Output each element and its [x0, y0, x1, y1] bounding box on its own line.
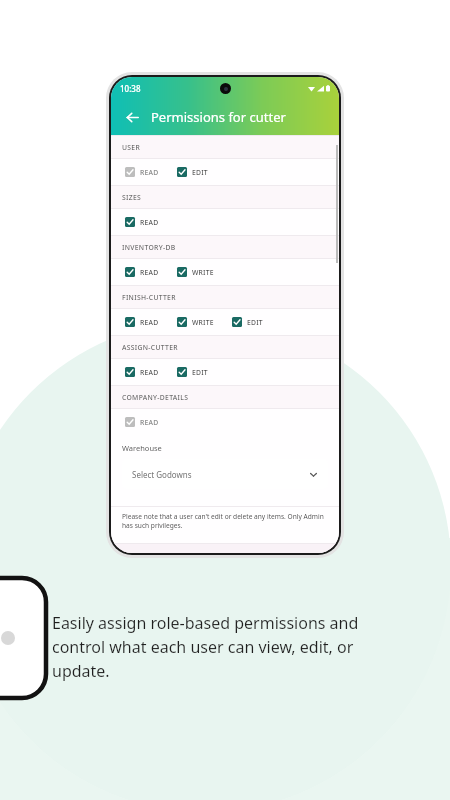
- button[interactable]: Back: [119, 104, 145, 130]
- staticText: READ: [140, 168, 159, 177]
- staticText: COMPANY-DETAILS: [122, 393, 189, 402]
- staticText: EDIT: [192, 168, 208, 177]
- button[interactable]: Select Godowns: [122, 459, 328, 489]
- staticText: Warehouse: [122, 443, 162, 453]
- staticText: WRITE: [192, 318, 214, 327]
- button[interactable]: EDIT: [232, 317, 281, 327]
- staticText: READ: [140, 218, 159, 227]
- button[interactable]: READ: [125, 217, 177, 227]
- button[interactable]: READ: [125, 367, 177, 377]
- staticText: READ: [140, 368, 159, 377]
- staticText: READ: [140, 318, 159, 327]
- staticText: Permissions for cutter: [151, 108, 286, 126]
- button[interactable]: EDIT: [177, 367, 226, 377]
- staticText: READ: [140, 418, 159, 427]
- button[interactable]: READ: [125, 267, 177, 277]
- staticText: EDIT: [192, 368, 208, 377]
- staticText: Select Godowns: [132, 469, 192, 480]
- staticText: 10:38: [120, 83, 141, 94]
- staticText: Please note that a user can't edit or de…: [122, 512, 328, 530]
- staticText: WRITE: [192, 268, 214, 277]
- button[interactable]: WRITE: [177, 267, 232, 277]
- staticText: FINISH-CUTTER: [122, 293, 176, 302]
- staticText: INVENTORY-DB: [122, 243, 176, 252]
- button[interactable]: READ: [125, 167, 177, 177]
- button[interactable]: READ: [125, 417, 177, 427]
- staticText: READ: [140, 268, 159, 277]
- staticText: SIZES: [122, 193, 142, 202]
- staticText: EDIT: [247, 318, 263, 327]
- staticText: ASSIGN-CUTTER: [122, 343, 178, 352]
- staticText: Easily assign role-based permissions and…: [52, 612, 412, 682]
- staticText: USER: [122, 143, 141, 152]
- button[interactable]: READ: [125, 317, 177, 327]
- button[interactable]: WRITE: [177, 317, 232, 327]
- button[interactable]: EDIT: [177, 167, 226, 177]
